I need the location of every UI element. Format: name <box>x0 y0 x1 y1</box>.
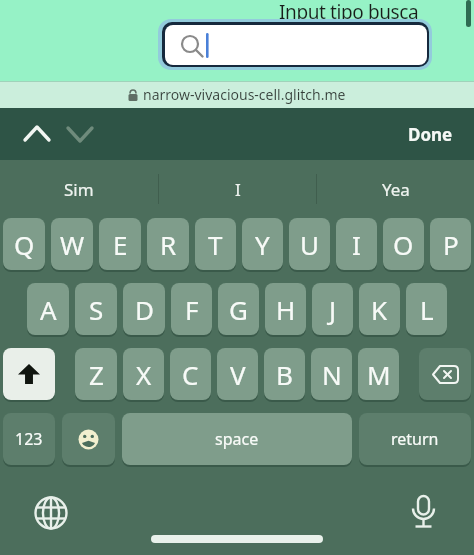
button[interactable]: X <box>123 348 164 400</box>
staticText: Yea <box>382 178 410 201</box>
staticText: Y <box>255 227 270 262</box>
staticText: F <box>185 292 199 327</box>
button[interactable]: I <box>159 160 316 218</box>
staticText: T <box>208 227 223 262</box>
staticText: W <box>60 227 85 262</box>
staticText: D <box>135 292 154 327</box>
button[interactable]: narrow-vivacious-cell.glitch.me <box>0 81 474 108</box>
button[interactable]: I <box>336 218 377 270</box>
staticText: space <box>215 428 259 450</box>
button[interactable]: F <box>171 283 212 335</box>
staticText: K <box>371 292 388 327</box>
staticText: H <box>276 292 296 327</box>
button[interactable]: N <box>311 348 352 400</box>
button[interactable]: W <box>51 218 93 270</box>
button[interactable]: K <box>359 283 400 335</box>
staticText: I <box>235 178 241 201</box>
button[interactable]: G <box>218 283 259 335</box>
button[interactable] <box>67 125 93 143</box>
staticText: Q <box>14 227 35 262</box>
button[interactable]: Yea <box>317 160 474 218</box>
button[interactable] <box>419 348 471 400</box>
button[interactable]: J <box>312 283 353 335</box>
button[interactable]: O <box>383 218 424 270</box>
button[interactable]: Y <box>242 218 283 270</box>
staticText: X <box>136 357 152 392</box>
button[interactable]: E <box>99 218 141 270</box>
button[interactable]: V <box>217 348 258 400</box>
staticText: J <box>329 292 337 327</box>
staticText: M <box>367 357 391 392</box>
staticText: V <box>230 357 246 392</box>
button[interactable]: return <box>359 413 471 465</box>
button[interactable]: B <box>264 348 305 400</box>
button[interactable]: T <box>195 218 236 270</box>
button[interactable] <box>33 495 69 531</box>
button[interactable]: R <box>147 218 189 270</box>
staticText: C <box>182 357 199 392</box>
button[interactable]: L <box>406 283 447 335</box>
staticText: B <box>276 357 293 392</box>
staticText: P <box>443 227 459 262</box>
staticText: R <box>160 227 177 262</box>
staticText: Sim <box>64 178 94 201</box>
button[interactable]: space <box>122 413 352 465</box>
staticText: return <box>391 428 439 450</box>
button[interactable] <box>62 413 115 465</box>
button[interactable]: Done <box>408 123 474 146</box>
staticText: narrow-vivacious-cell.glitch.me <box>143 85 346 104</box>
staticText: O <box>393 227 414 262</box>
staticText: A <box>40 292 57 327</box>
staticText: Input tipo busca <box>279 0 419 25</box>
button[interactable] <box>165 25 427 65</box>
staticText: I <box>352 227 361 262</box>
staticText: G <box>229 292 248 327</box>
button[interactable]: 123 <box>3 413 55 465</box>
staticText: S <box>89 292 104 327</box>
button[interactable]: P <box>430 218 471 270</box>
button[interactable]: Z <box>75 348 117 400</box>
button[interactable]: A <box>27 283 69 335</box>
staticText: Z <box>89 357 104 392</box>
button[interactable]: U <box>289 218 330 270</box>
staticText: Done <box>408 123 453 146</box>
staticText: 123 <box>15 428 43 450</box>
button[interactable]: C <box>170 348 211 400</box>
button[interactable]: M <box>358 348 399 400</box>
staticText: N <box>322 357 342 392</box>
button[interactable] <box>3 348 55 400</box>
button[interactable]: H <box>265 283 306 335</box>
staticText: L <box>420 292 434 327</box>
button[interactable] <box>24 125 50 143</box>
staticText: U <box>300 227 320 262</box>
button[interactable]: Sim <box>0 160 158 218</box>
button[interactable]: S <box>75 283 117 335</box>
button[interactable]: Q <box>3 218 45 270</box>
button[interactable] <box>405 483 442 520</box>
button[interactable]: D <box>123 283 165 335</box>
staticText: E <box>113 227 128 262</box>
